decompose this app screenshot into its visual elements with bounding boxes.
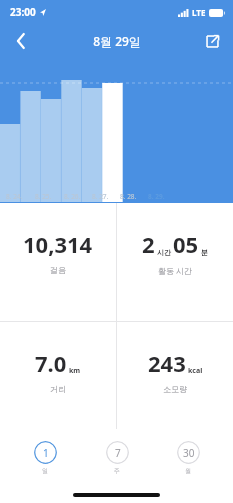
staticText: 일 — [42, 467, 48, 475]
staticText: 걸음 — [50, 265, 66, 275]
staticText: 23:00 — [10, 5, 36, 19]
staticText: km — [69, 366, 81, 376]
staticText: 7.0 — [35, 348, 67, 378]
staticText: 주 — [114, 467, 120, 475]
staticText: 8. 28. — [120, 192, 137, 201]
staticText: 8. 27. — [92, 192, 109, 201]
staticText: 7 — [115, 446, 121, 460]
button[interactable]: 2 — [117, 203, 233, 321]
button[interactable]: 1 — [22, 441, 68, 475]
staticText: 거리 — [50, 384, 66, 394]
staticText: 1 — [43, 446, 49, 460]
staticText: 8. 25. — [35, 192, 52, 201]
staticText: 30 — [183, 446, 195, 460]
staticText: 8. 26. — [64, 192, 81, 201]
button[interactable]: Share — [197, 26, 227, 56]
staticText: 분 — [201, 248, 208, 257]
staticText: 243 — [148, 348, 186, 378]
button[interactable]: Back — [6, 26, 36, 56]
staticText: 8. 29. — [148, 192, 165, 201]
staticText: 05 — [173, 229, 199, 259]
button[interactable]: 10,314 — [0, 203, 116, 321]
button[interactable]: 243 — [117, 322, 233, 429]
staticText: kcal — [188, 366, 203, 376]
staticText: 시간 — [157, 248, 171, 257]
staticText: 활동 시간 — [158, 265, 193, 276]
button[interactable]: 30 — [165, 441, 211, 475]
staticText: 2 — [142, 229, 155, 259]
staticText: 10,314 — [23, 229, 93, 259]
staticText: LTE — [192, 7, 206, 18]
button[interactable]: 7.0 — [0, 322, 116, 429]
staticText: 월 — [185, 467, 191, 475]
staticText: 8. 24. — [6, 192, 23, 201]
staticText: 소모량 — [163, 384, 187, 394]
staticText: 8월 29일 — [93, 33, 141, 49]
button[interactable]: 7 — [94, 441, 140, 475]
